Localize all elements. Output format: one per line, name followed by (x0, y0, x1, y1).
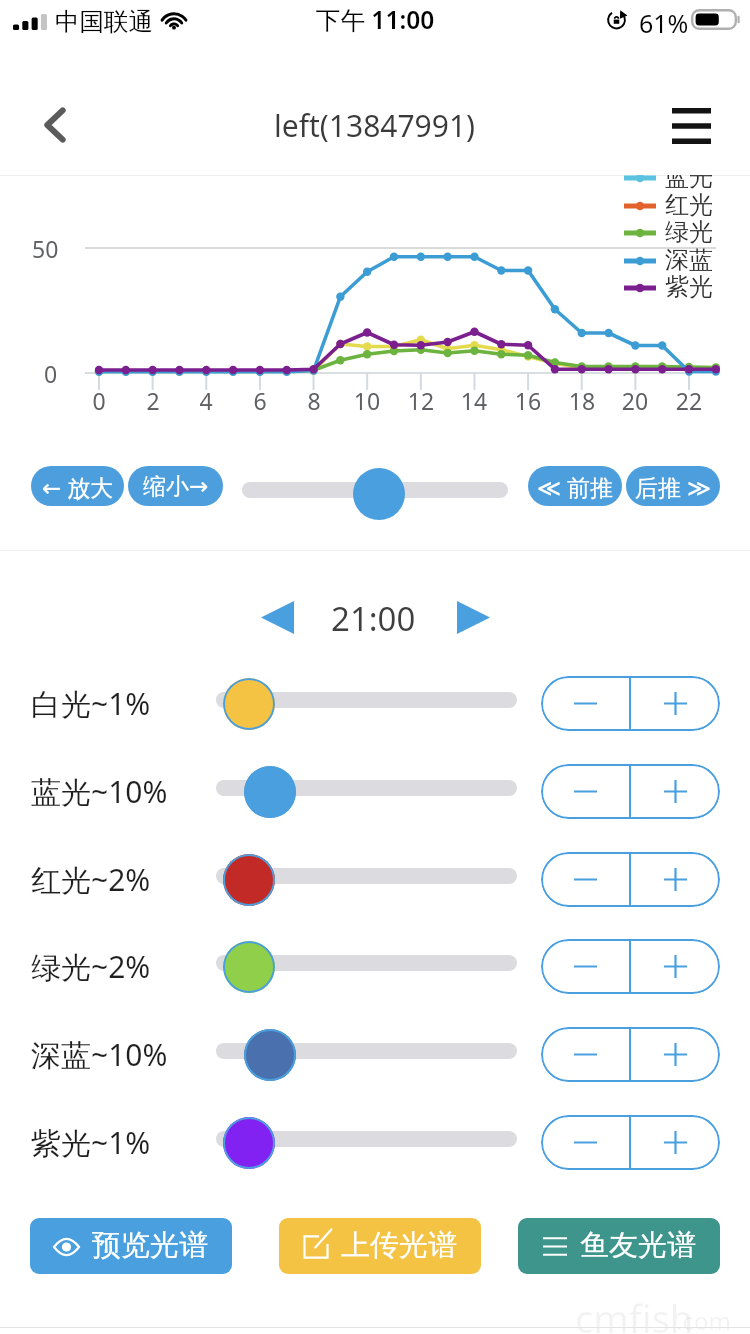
button[interactable]: 紫光~1% (223, 1117, 275, 1169)
staticText: 6 (243, 385, 277, 416)
button[interactable]: 绿光~2% (223, 941, 275, 993)
staticText: 蓝光~10% (31, 771, 168, 812)
button[interactable]: Decrease 深蓝~10% (541, 1027, 629, 1082)
staticText: 红光~2% (31, 859, 151, 900)
staticText: 10 (350, 385, 384, 416)
staticText: 22 (672, 385, 706, 416)
staticText: 下午 11:00 (316, 3, 435, 36)
staticText: 鱼友光谱 (580, 1227, 696, 1264)
staticText: .com (676, 1304, 731, 1334)
staticText: cmfish (575, 1292, 694, 1334)
button[interactable]: 深蓝~10% (244, 1029, 296, 1081)
button[interactable]: 白光~1% (223, 678, 275, 730)
button[interactable]: Decrease 白光~1% (541, 676, 629, 731)
staticText: 8 (297, 385, 331, 416)
staticText: 4 (189, 385, 223, 416)
staticText: 后推 ≫ (635, 471, 712, 502)
button[interactable]: Increase 红光~2% (631, 852, 720, 907)
staticText: 0 (82, 385, 116, 416)
button[interactable]: ≪ 前推 (528, 466, 622, 506)
button[interactable]: Next hour (441, 589, 505, 645)
staticText: 缩小→ (143, 472, 209, 501)
button[interactable]: Decrease 绿光~2% (541, 939, 629, 994)
staticText: 21:00 (331, 596, 416, 641)
staticText: 20 (618, 385, 652, 416)
staticText: 12 (404, 385, 438, 416)
staticText: 上传光谱 (341, 1227, 457, 1264)
button[interactable]: Decrease 蓝光~10% (541, 764, 629, 819)
staticText: ← 放大 (42, 471, 114, 502)
button[interactable]: Previous hour (245, 589, 309, 645)
button[interactable]: Increase 白光~1% (631, 676, 720, 731)
button[interactable]: 蓝光~10% (244, 766, 296, 818)
button[interactable]: 鱼友光谱 (518, 1218, 720, 1274)
button[interactable]: Increase 绿光~2% (631, 939, 720, 994)
staticText: 白光~1% (31, 683, 151, 724)
staticText: 深蓝 (665, 245, 713, 275)
button[interactable]: Time scale (353, 468, 405, 520)
staticText: 18 (565, 385, 599, 416)
button[interactable]: Decrease 紫光~1% (541, 1115, 629, 1170)
button[interactable]: 红光~2% (223, 854, 275, 906)
staticText: 紫光~1% (31, 1122, 151, 1163)
button[interactable]: Increase 蓝光~10% (631, 764, 720, 819)
staticText: ≪ 前推 (537, 471, 614, 502)
staticText: 深蓝~10% (31, 1034, 168, 1075)
staticText: 14 (457, 385, 491, 416)
staticText: 蓝光 (665, 175, 713, 192)
staticText: 中国联通 (55, 6, 153, 37)
staticText: 绿光 (665, 217, 713, 247)
staticText: 61% (639, 6, 689, 40)
button[interactable]: 缩小→ (128, 466, 223, 506)
staticText: 50 (32, 233, 59, 264)
staticText: left(13847991) (274, 105, 476, 146)
staticText: 紫光 (665, 272, 713, 302)
button[interactable]: 上传光谱 (279, 1218, 481, 1274)
button[interactable]: 后推 ≫ (626, 466, 720, 506)
staticText: 0 (44, 358, 58, 389)
button[interactable]: Increase 深蓝~10% (631, 1027, 720, 1082)
staticText: 红光 (665, 190, 713, 220)
staticText: 绿光~2% (31, 946, 151, 987)
button[interactable]: Increase 紫光~1% (631, 1115, 720, 1170)
button[interactable]: Back (22, 93, 86, 157)
button[interactable]: Menu (639, 73, 744, 178)
staticText: 2 (136, 385, 170, 416)
button[interactable]: 预览光谱 (30, 1218, 232, 1274)
staticText: 16 (511, 385, 545, 416)
button[interactable]: ← 放大 (31, 466, 124, 506)
button[interactable]: Decrease 红光~2% (541, 852, 629, 907)
staticText: 预览光谱 (92, 1227, 208, 1264)
